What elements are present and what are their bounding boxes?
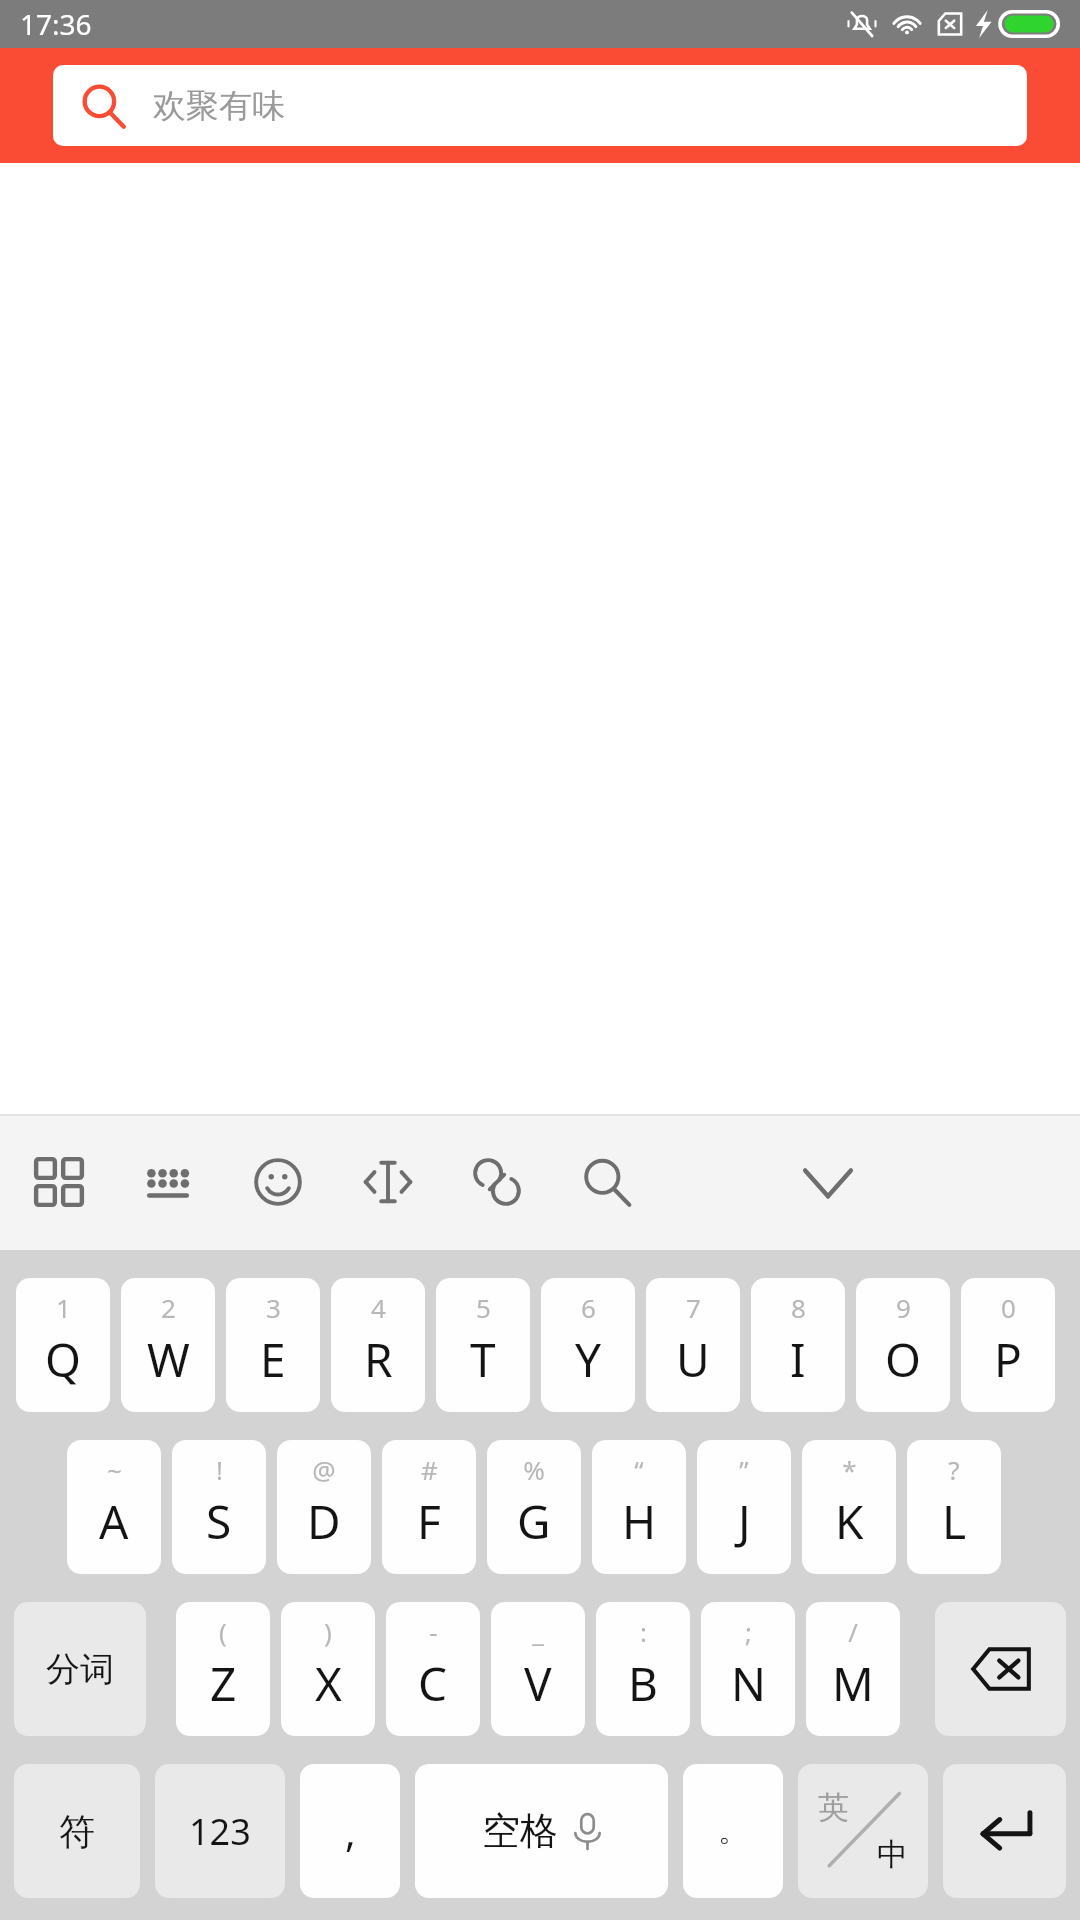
button[interactable]: Apps (15, 1138, 103, 1226)
staticText: W (147, 1328, 190, 1391)
button[interactable]: 3 (226, 1278, 320, 1412)
staticText: - (429, 1614, 438, 1649)
staticText: 1 (56, 1290, 71, 1325)
button[interactable]: , (300, 1764, 400, 1898)
button[interactable]: ? (907, 1440, 1001, 1574)
staticText: ~ (107, 1452, 122, 1487)
staticText: 7 (686, 1290, 701, 1325)
staticText: U (676, 1328, 710, 1391)
button[interactable]: _ (491, 1602, 585, 1736)
staticText: 123 (189, 1807, 251, 1856)
staticText: L (942, 1490, 967, 1553)
staticText: 英 (818, 1788, 849, 1827)
staticText: * (842, 1452, 857, 1487)
button[interactable]: # (382, 1440, 476, 1574)
staticText: 欢聚有味 (153, 85, 285, 127)
button[interactable]: 空格 (415, 1764, 668, 1898)
staticText: K (835, 1490, 864, 1553)
button[interactable]: Emoji (234, 1138, 322, 1226)
button[interactable]: ; (701, 1602, 795, 1736)
staticText: S (206, 1490, 232, 1553)
staticText: ? (948, 1452, 960, 1487)
button[interactable]: ) (281, 1602, 375, 1736)
button[interactable]: 6 (541, 1278, 635, 1412)
staticText: H (622, 1490, 657, 1553)
button[interactable]: * (802, 1440, 896, 1574)
staticText: % (523, 1452, 545, 1487)
staticText: M (832, 1652, 874, 1715)
button[interactable]: Backspace (935, 1602, 1066, 1736)
staticText: 空格 (482, 1807, 558, 1855)
staticText: , (345, 1804, 356, 1858)
staticText: 17:36 (20, 5, 92, 43)
staticText: F (417, 1490, 441, 1553)
staticText: 9 (896, 1290, 911, 1325)
button[interactable]: 。 (683, 1764, 783, 1898)
staticText: 符 (59, 1809, 95, 1854)
button[interactable]: : (596, 1602, 690, 1736)
staticText: Q (45, 1328, 81, 1391)
button[interactable]: ” (697, 1440, 791, 1574)
button[interactable]: / (806, 1602, 900, 1736)
staticText: I (790, 1328, 806, 1391)
button[interactable]: 2 (121, 1278, 215, 1412)
staticText: “ (634, 1452, 644, 1487)
button[interactable]: Move cursor (344, 1138, 432, 1226)
staticText: 。 (718, 1812, 748, 1850)
button[interactable]: 5 (436, 1278, 530, 1412)
staticText: 分词 (46, 1648, 114, 1691)
staticText: X (315, 1652, 342, 1715)
button[interactable]: Clipboard (453, 1138, 541, 1226)
staticText: O (885, 1328, 921, 1391)
staticText: @ (312, 1452, 336, 1487)
button[interactable]: 7 (646, 1278, 740, 1412)
staticText: 5 (476, 1290, 491, 1325)
button[interactable]: Search (563, 1138, 651, 1226)
button[interactable]: Enter (943, 1764, 1066, 1898)
staticText: ( (219, 1614, 227, 1649)
button[interactable]: Hide keyboard (784, 1138, 872, 1226)
staticText: P (994, 1328, 1022, 1391)
staticText: B (628, 1652, 658, 1715)
button[interactable]: ~ (67, 1440, 161, 1574)
staticText: ; (745, 1614, 752, 1649)
staticText: ” (739, 1452, 749, 1487)
button[interactable]: 分词 (14, 1602, 146, 1736)
staticText: 6 (581, 1290, 596, 1325)
button[interactable]: Keyboard layout (124, 1138, 212, 1226)
button[interactable]: “ (592, 1440, 686, 1574)
button[interactable]: 9 (856, 1278, 950, 1412)
staticText: R (364, 1328, 393, 1391)
staticText: # (421, 1452, 438, 1487)
button[interactable]: Switch language (798, 1764, 928, 1898)
button[interactable]: 123 (155, 1764, 285, 1898)
staticText: ! (216, 1452, 223, 1487)
staticText: Y (575, 1328, 602, 1391)
staticText: : (640, 1614, 647, 1649)
button[interactable]: @ (277, 1440, 371, 1574)
staticText: 8 (791, 1290, 806, 1325)
button[interactable]: - (386, 1602, 480, 1736)
staticText: 中 (877, 1835, 908, 1874)
staticText: 3 (266, 1290, 281, 1325)
staticText: E (260, 1328, 286, 1391)
staticText: 2 (161, 1290, 176, 1325)
button[interactable]: % (487, 1440, 581, 1574)
staticText: T (470, 1328, 496, 1391)
staticText: Z (210, 1652, 237, 1715)
staticText: ) (324, 1614, 332, 1649)
staticText: V (524, 1652, 552, 1715)
staticText: G (517, 1490, 551, 1553)
button[interactable]: 符 (14, 1764, 140, 1898)
button[interactable]: ( (176, 1602, 270, 1736)
button[interactable]: ! (172, 1440, 266, 1574)
button[interactable]: 欢聚有味 (53, 65, 1027, 146)
button[interactable]: 0 (961, 1278, 1055, 1412)
staticText: J (738, 1490, 751, 1553)
staticText: _ (532, 1614, 544, 1649)
button[interactable]: 1 (16, 1278, 110, 1412)
staticText: N (731, 1652, 766, 1715)
button[interactable]: 4 (331, 1278, 425, 1412)
staticText: 4 (371, 1290, 386, 1325)
button[interactable]: 8 (751, 1278, 845, 1412)
